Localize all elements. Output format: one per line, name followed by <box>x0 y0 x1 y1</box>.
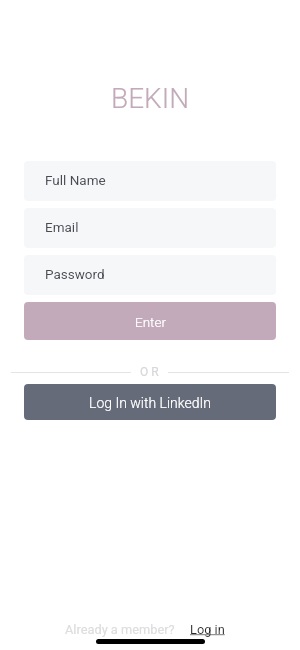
staticText: Email <box>45 219 79 235</box>
staticText: Already a member? <box>65 622 175 637</box>
button[interactable]: Log in <box>190 622 225 637</box>
staticText: Enter <box>135 314 166 330</box>
staticText: Log in <box>190 622 225 637</box>
button[interactable]: Password <box>24 255 276 295</box>
button[interactable]: Enter <box>24 302 276 340</box>
staticText: Full Name <box>45 172 106 188</box>
button[interactable]: Email <box>24 208 276 248</box>
staticText: BEKIN <box>111 82 190 115</box>
staticText: O R <box>140 365 159 379</box>
staticText: Log In with LinkedIn <box>89 395 211 411</box>
staticText: Password <box>45 266 105 282</box>
button[interactable]: Full Name <box>24 161 276 201</box>
button[interactable]: Log In with LinkedIn <box>24 384 276 420</box>
